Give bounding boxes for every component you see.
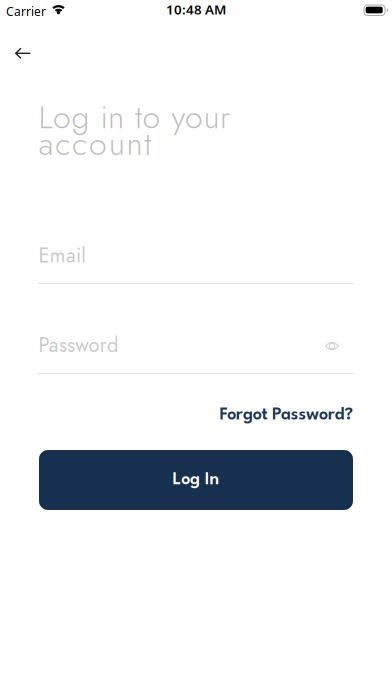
staticText: 10:48 AM xyxy=(166,0,226,18)
staticText: Forgot Password? xyxy=(219,407,353,424)
staticText: Carrier xyxy=(6,3,46,19)
button[interactable]: Forgot Password? xyxy=(219,407,353,424)
staticText: Log In xyxy=(172,472,219,488)
button[interactable] xyxy=(320,336,344,356)
button[interactable] xyxy=(5,39,49,69)
button[interactable]: Email xyxy=(38,241,353,284)
button[interactable]: Log In xyxy=(39,450,353,510)
button[interactable]: Password xyxy=(38,330,353,374)
staticText: Log in to your xyxy=(38,94,230,140)
staticText: Password xyxy=(38,330,118,359)
staticText: account xyxy=(38,121,151,167)
staticText: Email xyxy=(38,241,86,270)
